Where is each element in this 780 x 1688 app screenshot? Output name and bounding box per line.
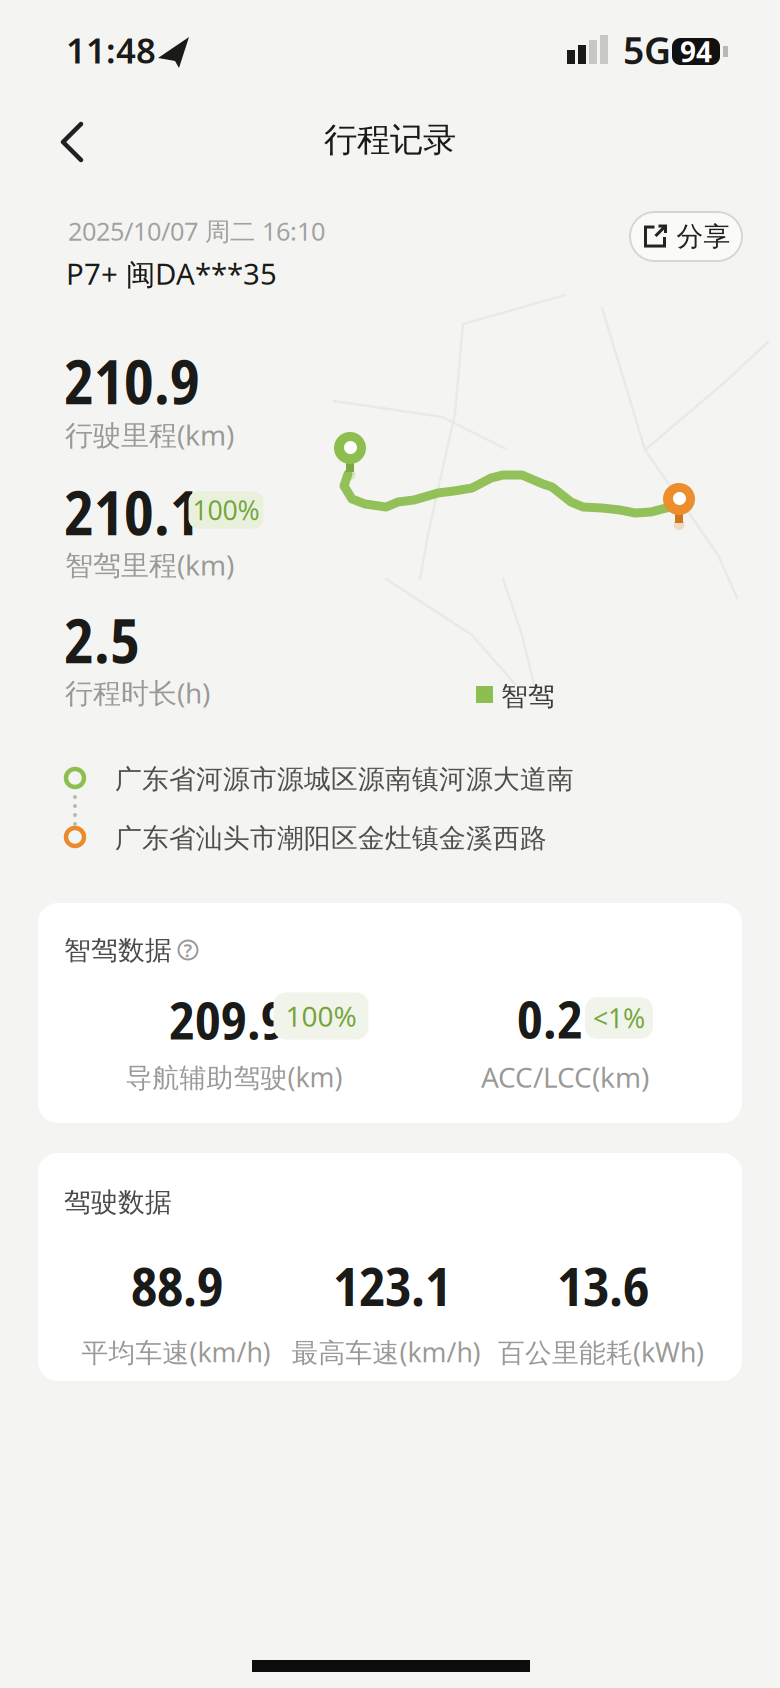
staticText: 广东省河源市源城区源南镇河源大道南 [115,763,574,796]
staticText: 0.2 [517,983,583,1054]
staticText: 平均车速(km/h) [81,1334,270,1370]
staticText: 210.1 [64,471,200,553]
button[interactable]: 分享 [629,211,743,262]
staticText: 行程时长(h) [65,674,210,711]
staticText: 2.5 [64,599,140,681]
staticText: 百公里能耗(kWh) [498,1334,704,1370]
staticText: 100% [285,997,356,1035]
staticText: 分享 [676,220,730,253]
staticText: <1% [593,1000,645,1036]
staticText: 94 [680,33,712,70]
staticText: P7+ 闽DA***35 [66,254,277,293]
staticText: 智驾 [501,680,555,713]
staticText: ? [183,938,192,962]
staticText: 行驶里程(km) [65,416,234,453]
staticText: 5G [623,25,671,75]
button[interactable] [61,122,83,162]
staticText: 智驾数据 [64,934,172,967]
staticText: 210.9 [64,340,200,422]
staticText: 驾驶数据 [64,1186,172,1219]
staticText: ACC/LCC(km) [481,1058,649,1096]
staticText: 100% [192,492,259,528]
staticText: 123.1 [333,1249,451,1322]
staticText: 导航辅助驾驶(km) [125,1059,342,1095]
button[interactable]: ? [170,932,206,968]
staticText: 11:48 [66,27,156,73]
staticText: 2025/10/07 周二 16:10 [68,214,325,248]
staticText: 行程记录 [324,119,456,160]
staticText: 88.9 [131,1249,223,1322]
staticText: 209.9 [169,984,287,1055]
staticText: 智驾里程(km) [65,546,234,583]
staticText: 13.6 [557,1249,649,1322]
staticText: 广东省汕头市潮阳区金灶镇金溪西路 [115,822,547,855]
staticText: 最高车速(km/h) [291,1334,480,1370]
